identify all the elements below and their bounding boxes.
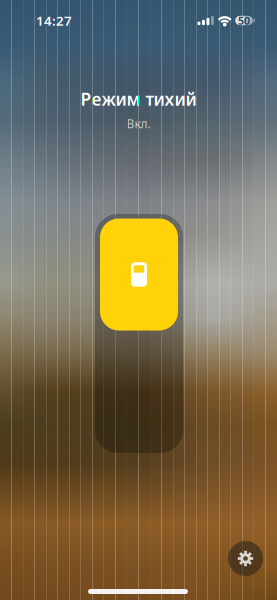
button[interactable]: [95, 214, 183, 453]
staticText: 50: [238, 13, 250, 28]
staticText: 14:27: [36, 12, 72, 29]
staticText: Вкл.: [126, 115, 150, 131]
staticText: Режим тихий: [80, 87, 196, 110]
button[interactable]: Settings: [228, 541, 263, 576]
